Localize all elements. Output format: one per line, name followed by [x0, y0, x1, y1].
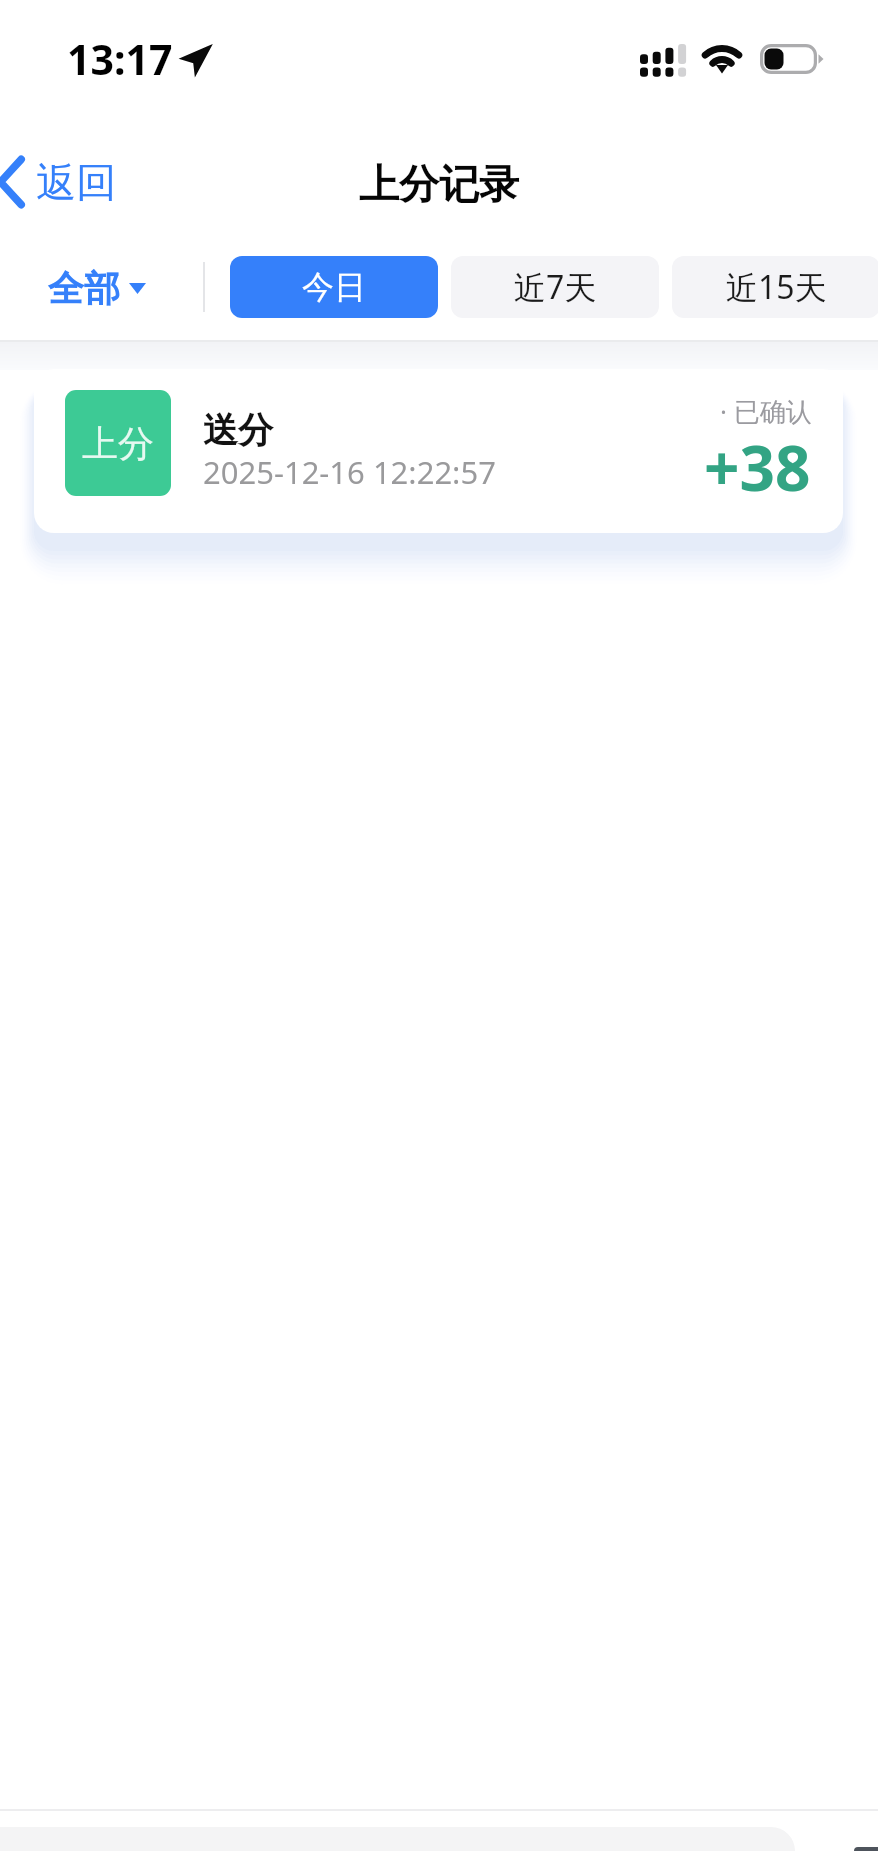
button[interactable]: 近7天: [451, 256, 659, 318]
staticText: 全部: [48, 266, 120, 311]
other: Cellular signal: [640, 44, 686, 77]
staticText: +38: [704, 425, 811, 509]
staticText: 上分: [82, 421, 154, 466]
staticText: 送分: [203, 408, 273, 452]
staticText: 13:17: [67, 31, 173, 87]
staticText: 近15天: [726, 265, 827, 309]
other: Battery: [760, 44, 824, 74]
staticText: 返回: [36, 157, 116, 207]
button[interactable]: 今日: [230, 256, 438, 318]
staticText: 2025-12-16 12:22:57: [203, 451, 496, 493]
button[interactable]: 上分: [34, 369, 843, 533]
button[interactable]: 返回: [0, 140, 116, 224]
button[interactable]: 全部: [48, 264, 146, 312]
other: Wi-Fi: [702, 43, 742, 75]
staticText: 上分记录: [359, 159, 519, 209]
button[interactable]: 近15天: [672, 256, 878, 318]
staticText: 今日: [302, 267, 366, 307]
staticText: · 已确认: [720, 393, 812, 429]
staticText: 近7天: [514, 265, 597, 309]
